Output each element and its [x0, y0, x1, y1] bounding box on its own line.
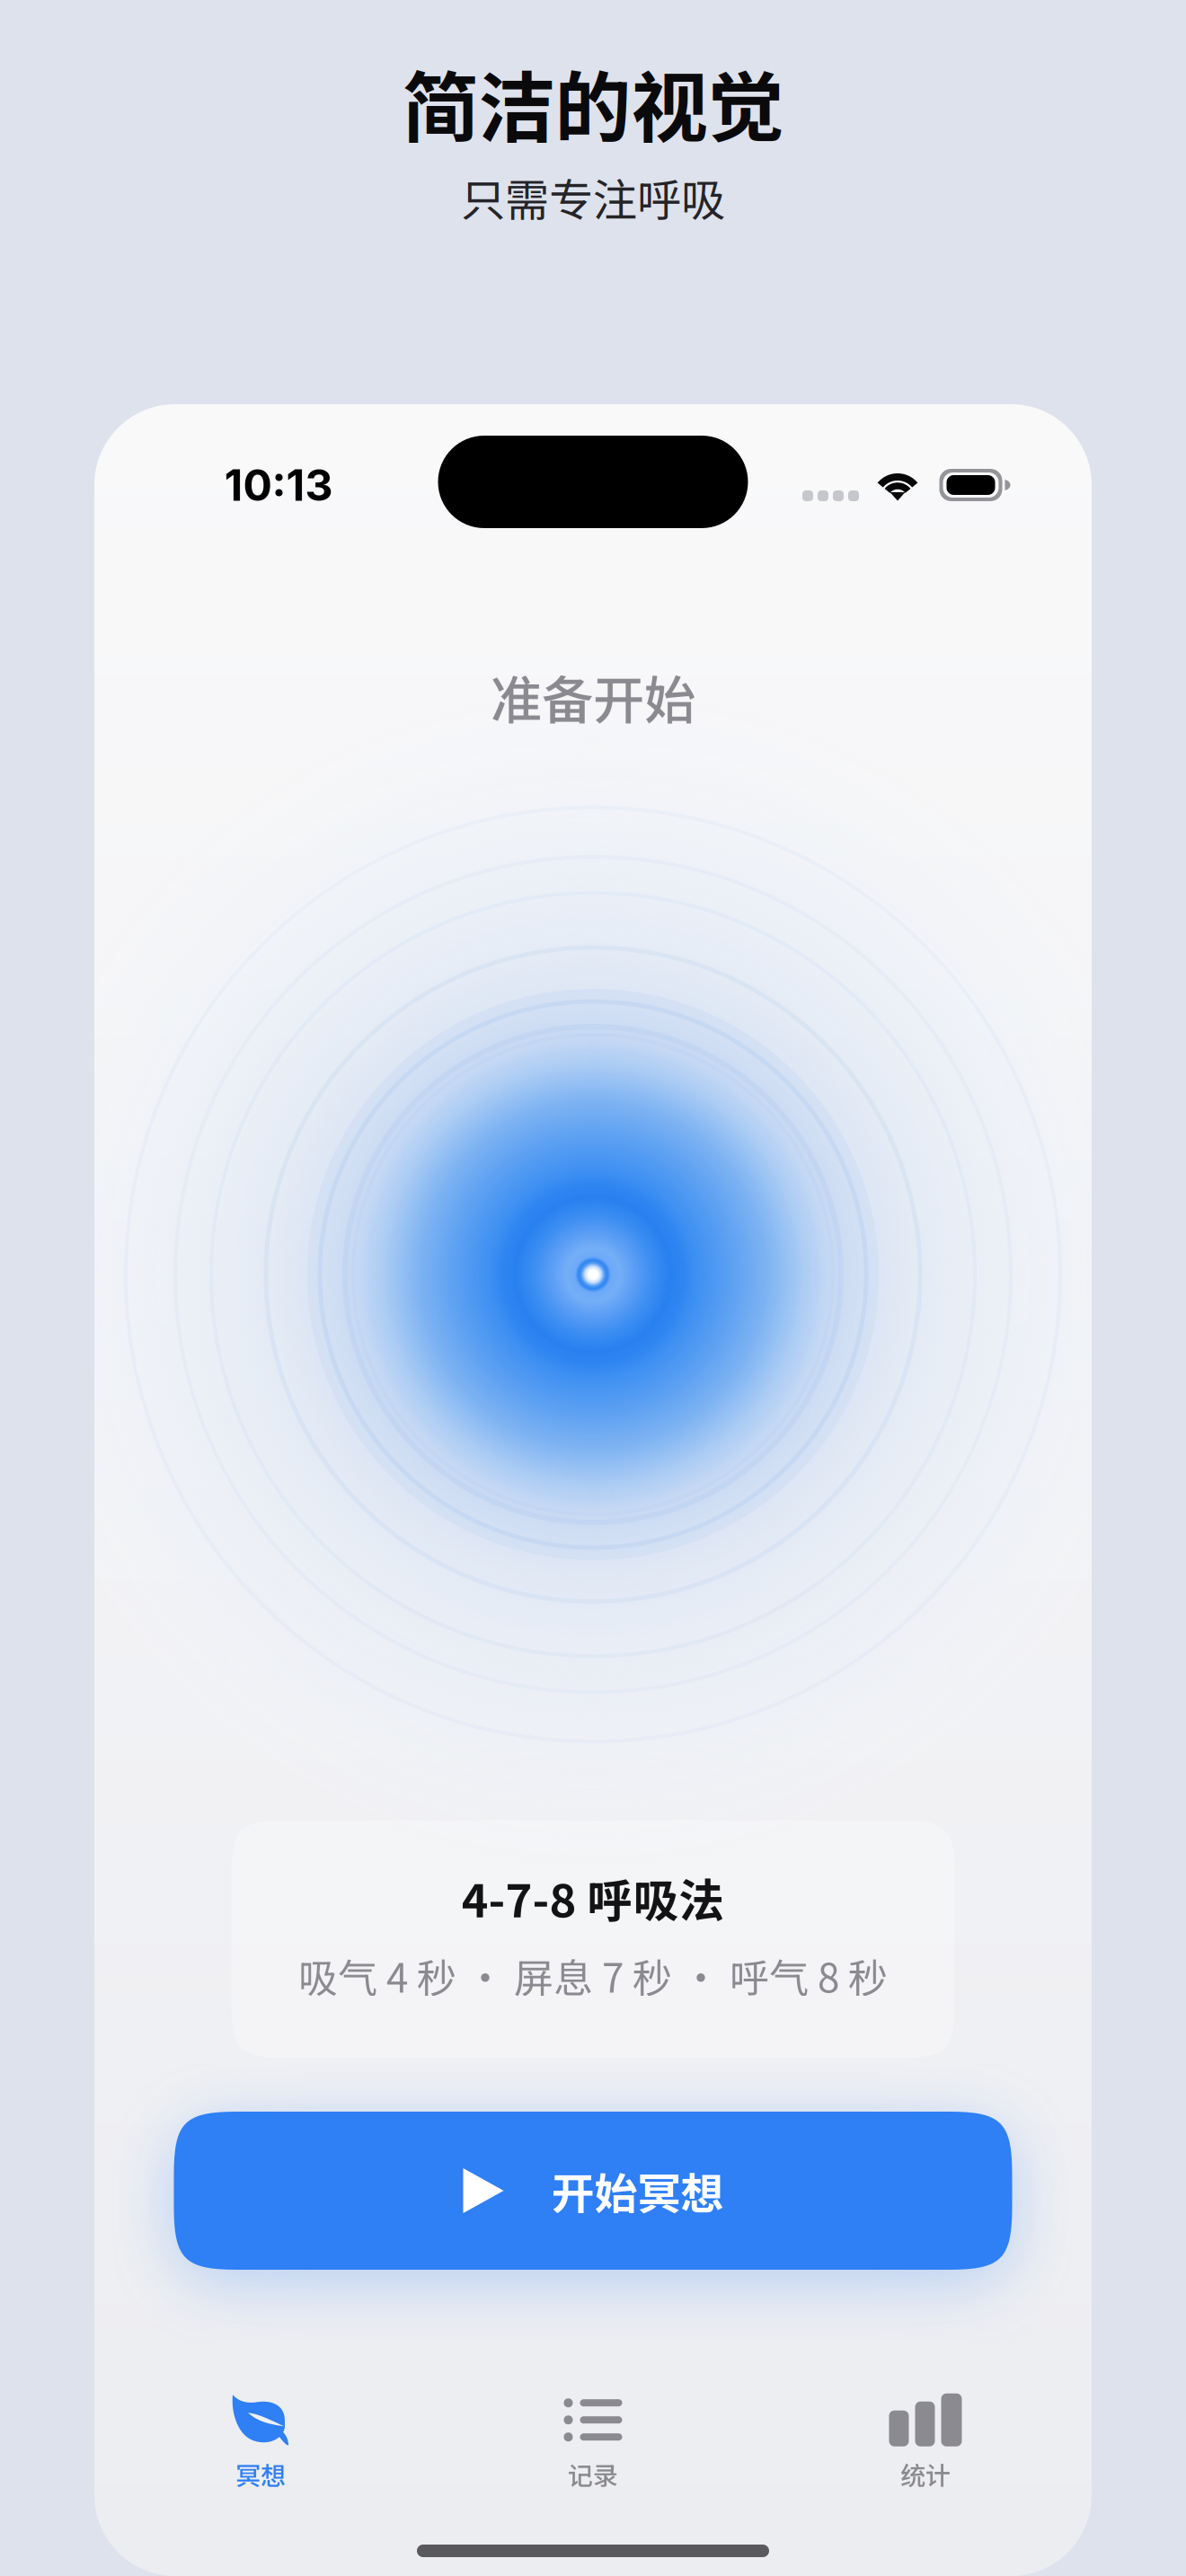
staticText: 10:13 — [224, 459, 333, 511]
button[interactable]: 开始冥想 — [174, 2112, 1012, 2270]
staticText: 准备开始 — [491, 659, 695, 734]
staticText: 记录 — [568, 2456, 618, 2492]
staticText: 4-7-8 呼吸法 — [461, 1865, 725, 1931]
staticText: 冥想 — [235, 2456, 286, 2492]
staticText: 统计 — [900, 2456, 951, 2492]
button[interactable]: 统计 — [759, 2379, 1092, 2505]
button[interactable]: 记录 — [427, 2379, 759, 2505]
button[interactable]: 冥想 — [94, 2379, 427, 2505]
staticText: 开始冥想 — [551, 2159, 724, 2222]
staticText: 吸气 4 秒 · 屏息 7 秒 · 呼气 8 秒 — [298, 1947, 888, 2004]
staticText: 只需专注呼吸 — [461, 165, 725, 229]
staticText: 简洁的视觉 — [402, 47, 784, 158]
